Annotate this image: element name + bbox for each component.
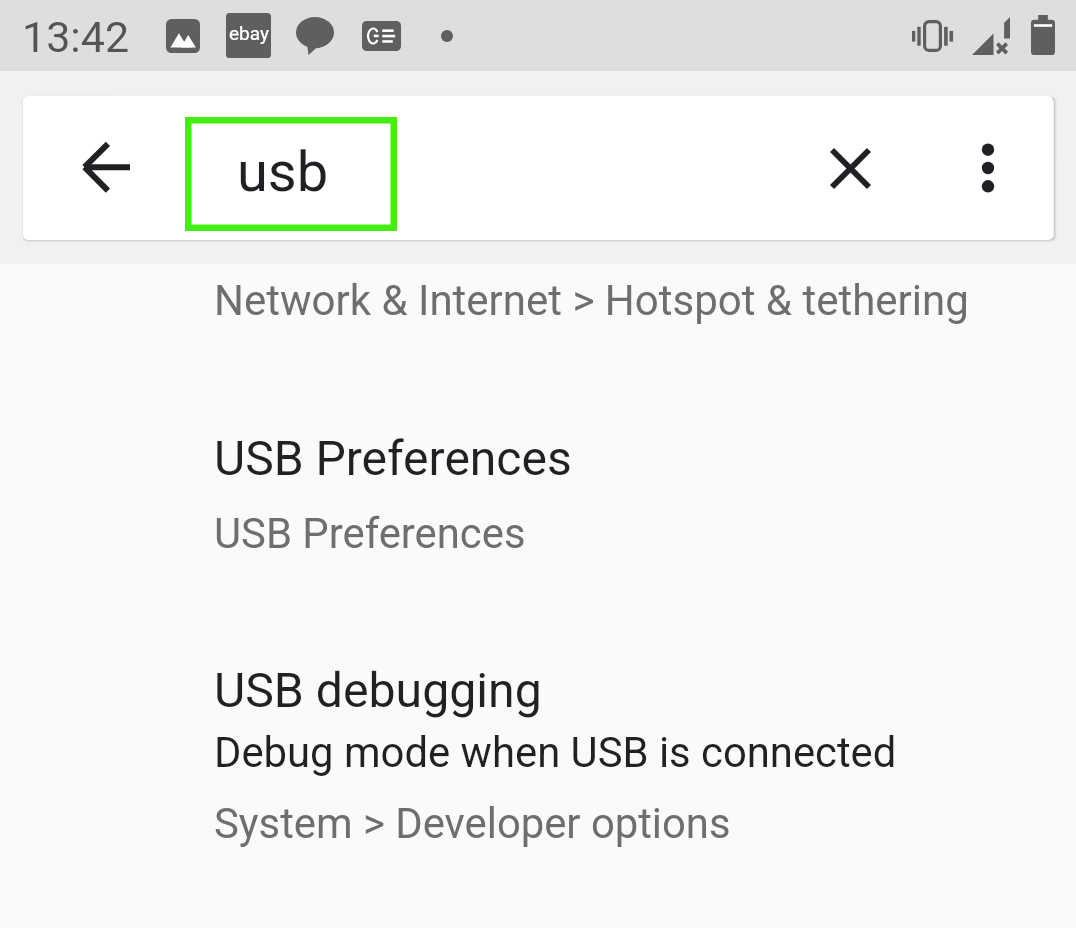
staticText: usb <box>237 139 329 205</box>
button[interactable]: More options <box>964 144 1012 192</box>
button[interactable]: USB Preferences <box>0 402 1076 582</box>
staticText: System > Developer options <box>214 799 731 848</box>
staticText: USB Preferences <box>214 509 526 558</box>
staticText: Network & Internet > Hotspot & tethering <box>214 276 969 325</box>
button[interactable]: Network & Internet > Hotspot & tethering <box>0 264 1076 364</box>
staticText: USB debugging <box>214 662 542 718</box>
button[interactable]: USB debugging <box>0 638 1076 874</box>
button[interactable]: Clear search <box>826 144 874 192</box>
button[interactable]: usb <box>185 117 397 231</box>
button[interactable]: Navigate up <box>82 143 130 191</box>
staticText: USB Preferences <box>214 430 572 486</box>
staticText: 13:42 <box>22 12 130 62</box>
staticText: Debug mode when USB is connected <box>214 728 897 777</box>
staticText: ebay <box>229 22 269 44</box>
